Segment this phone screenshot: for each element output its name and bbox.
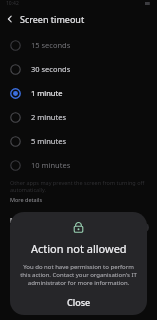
staticText: Screen timeout (20, 13, 85, 25)
button[interactable]: 10 minutes (0, 153, 157, 177)
staticText: 2 minutes (31, 112, 66, 122)
staticText: Close (67, 296, 91, 308)
staticText: 1 minute (31, 88, 63, 98)
staticText: Action not allowed (31, 241, 127, 256)
staticText: 10:42 (6, 0, 19, 7)
button[interactable]: 15 seconds (0, 33, 157, 57)
button[interactable]: 30 seconds (0, 57, 157, 81)
button[interactable]: Keep screen on while viewing (0, 213, 157, 242)
button[interactable]: Keep screen on toggle (132, 223, 149, 232)
staticText: More details (10, 196, 43, 203)
staticText: Keep screen on while viewing (10, 215, 114, 225)
staticText: 5 minutes (31, 136, 66, 146)
staticText: You do not have permission to perform th… (18, 263, 139, 287)
staticText: Other apps may prevent the screen from t… (10, 179, 147, 193)
button[interactable]: 2 minutes (0, 105, 157, 129)
button[interactable]: More details (10, 196, 43, 203)
staticText: Keep the screen on while you're looking … (10, 226, 128, 240)
staticText: 10 minutes (31, 160, 71, 170)
staticText: 15 seconds (31, 40, 71, 50)
button[interactable]: 5 minutes (0, 129, 157, 153)
button[interactable]: Back (0, 9, 20, 29)
button[interactable]: 1 minute (0, 81, 157, 105)
staticText: 30 seconds (31, 64, 71, 74)
button[interactable]: Close (10, 289, 147, 315)
